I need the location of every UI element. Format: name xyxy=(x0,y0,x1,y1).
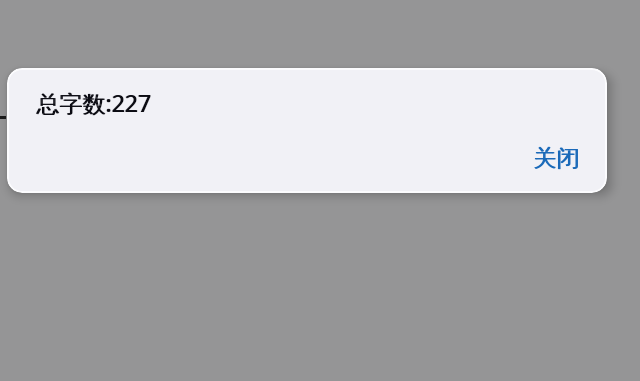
staticText: 总字数:227 xyxy=(36,87,151,118)
staticText: 关闭 xyxy=(533,144,579,173)
button[interactable]: 关闭 xyxy=(507,134,605,183)
staticText: 总字数:227 xyxy=(37,87,152,118)
staticText: 关闭 xyxy=(534,144,580,173)
